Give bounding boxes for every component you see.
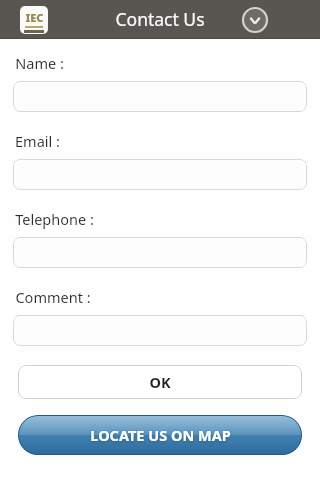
staticText: Email :: [15, 131, 60, 151]
button[interactable]: [13, 315, 307, 346]
staticText: OK: [149, 372, 171, 392]
staticText: Comment :: [15, 287, 91, 307]
button[interactable]: LOCATE US ON MAP: [18, 415, 302, 455]
button[interactable]: [13, 81, 307, 112]
button[interactable]: [13, 237, 307, 268]
staticText: Telephone :: [15, 209, 94, 229]
staticText: Name :: [15, 53, 64, 73]
button[interactable]: [13, 159, 307, 190]
button[interactable]: OK: [18, 365, 302, 399]
staticText: IEC: [25, 10, 44, 25]
staticText: Contact Us: [115, 7, 205, 31]
staticText: LOCATE US ON MAP: [90, 425, 231, 445]
button[interactable]: IEC home: [20, 6, 48, 34]
button[interactable]: Expand menu: [242, 7, 268, 33]
